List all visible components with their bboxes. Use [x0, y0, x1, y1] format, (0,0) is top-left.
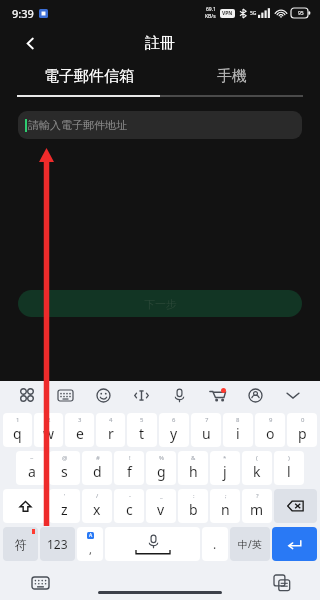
staticText: r: [108, 424, 114, 443]
button[interactable]: @: [49, 451, 80, 485]
button[interactable]: Backspace: [274, 489, 317, 523]
button[interactable]: :: [178, 489, 208, 523]
button[interactable]: ): [274, 451, 304, 485]
button[interactable]: Back: [16, 29, 44, 57]
staticText: 8: [236, 416, 240, 424]
staticText: ': [64, 492, 66, 500]
button[interactable]: 9: [255, 413, 285, 447]
button[interactable]: Enter: [272, 527, 317, 561]
button[interactable]: 2: [34, 413, 63, 447]
staticText: m: [250, 500, 264, 519]
button[interactable]: 1: [3, 413, 32, 447]
button[interactable]: ~: [16, 451, 47, 485]
staticText: %: [159, 454, 164, 462]
button[interactable]: A: [77, 527, 103, 561]
button[interactable]: -: [114, 489, 144, 523]
staticText: *: [223, 454, 227, 462]
button[interactable]: 下一步: [18, 290, 302, 317]
staticText: 註冊: [145, 34, 175, 53]
staticText: 中/英: [238, 537, 262, 551]
staticText: 6: [172, 416, 176, 424]
staticText: 2: [47, 416, 51, 424]
staticText: @: [62, 454, 68, 462]
button[interactable]: 8: [223, 413, 253, 447]
button[interactable]: 符: [3, 527, 38, 561]
staticText: 9: [269, 416, 273, 424]
staticText: t: [139, 424, 145, 443]
staticText: g: [157, 462, 166, 481]
staticText: s: [61, 462, 68, 481]
button[interactable]: Voice input: [168, 384, 190, 406]
button[interactable]: 5: [127, 413, 157, 447]
button[interactable]: /: [82, 489, 112, 523]
button[interactable]: ?: [242, 489, 272, 523]
button[interactable]: 請輸入電子郵件地址: [18, 111, 302, 139]
button[interactable]: *: [210, 451, 240, 485]
staticText: k: [253, 462, 261, 481]
button[interactable]: (: [242, 451, 272, 485]
button[interactable]: Text edit: [130, 384, 152, 406]
button[interactable]: #: [82, 451, 112, 485]
staticText: f: [127, 462, 132, 481]
staticText: 請輸入電子郵件地址: [28, 118, 127, 132]
staticText: 0: [301, 416, 305, 424]
button[interactable]: ': [49, 489, 80, 523]
button[interactable]: &: [178, 451, 208, 485]
button[interactable]: Collapse keyboard: [282, 384, 304, 406]
staticText: 9:39: [12, 6, 34, 21]
button[interactable]: 7: [191, 413, 221, 447]
staticText: 下一步: [144, 297, 177, 311]
button[interactable]: 123: [40, 527, 75, 561]
staticText: -: [129, 492, 131, 500]
staticText: p: [298, 424, 307, 443]
button[interactable]: Clipboard: [270, 571, 294, 595]
staticText: .: [213, 536, 217, 552]
staticText: z: [61, 500, 68, 519]
button[interactable]: 手機: [160, 60, 303, 92]
button[interactable]: Avatar: [244, 384, 266, 406]
button[interactable]: _: [146, 489, 176, 523]
staticText: d: [93, 462, 102, 481]
button[interactable]: Shopping: [206, 384, 228, 406]
staticText: u: [202, 424, 211, 443]
button[interactable]: 6: [159, 413, 189, 447]
staticText: v: [157, 500, 165, 519]
staticText: 7: [205, 416, 209, 424]
staticText: 符: [15, 537, 27, 552]
staticText: /: [96, 492, 99, 500]
staticText: &: [191, 454, 196, 462]
staticText: 電子郵件信箱: [44, 67, 134, 86]
staticText: 4: [109, 416, 113, 424]
button[interactable]: 中/英: [230, 527, 270, 561]
staticText: 69.1: [206, 6, 216, 13]
staticText: e: [76, 424, 84, 443]
staticText: 5: [140, 416, 144, 424]
button[interactable]: Hide keyboard: [28, 571, 52, 595]
button[interactable]: ;: [210, 489, 240, 523]
button[interactable]: 0: [287, 413, 317, 447]
staticText: ): [288, 454, 290, 462]
button[interactable]: !: [114, 451, 144, 485]
button[interactable]: Keyboard layout: [54, 384, 76, 406]
staticText: KB/s: [205, 13, 216, 20]
staticText: j: [223, 462, 227, 481]
button[interactable]: 3: [65, 413, 94, 447]
button[interactable]: Space: [105, 527, 200, 561]
staticText: l: [287, 462, 291, 481]
staticText: !: [129, 454, 131, 462]
button[interactable]: Shift: [3, 489, 47, 523]
button[interactable]: 電子郵件信箱: [17, 60, 160, 92]
button[interactable]: %: [146, 451, 176, 485]
staticText: c: [126, 500, 133, 519]
button[interactable]: 4: [96, 413, 125, 447]
staticText: VPN: [222, 10, 233, 17]
staticText: ?: [256, 492, 259, 500]
staticText: ,: [89, 542, 92, 557]
staticText: 1: [16, 416, 20, 424]
staticText: A: [89, 532, 93, 539]
button[interactable]: .: [202, 527, 228, 561]
button[interactable]: Emoji: [92, 384, 114, 406]
button[interactable]: Apps: [16, 384, 38, 406]
staticText: 5G: [250, 10, 257, 17]
staticText: h: [189, 462, 198, 481]
